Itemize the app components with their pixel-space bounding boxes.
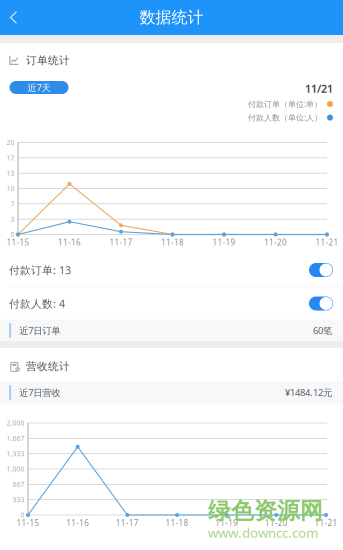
staticText: 13 xyxy=(6,169,14,178)
staticText: 3 xyxy=(10,215,14,224)
staticText: 11-15 xyxy=(6,237,29,248)
button[interactable]: Back xyxy=(2,0,32,35)
staticText: 11-21 xyxy=(314,518,337,528)
staticText: 1,667 xyxy=(6,434,24,443)
staticText: 订单统计 xyxy=(26,54,70,67)
staticText: 绿色资源网 xyxy=(208,497,323,525)
staticText: 11-19 xyxy=(212,237,235,248)
staticText: ¥1484.12元 xyxy=(285,386,332,399)
staticText: 付款订单: 13 xyxy=(9,263,71,277)
button[interactable]: 付款人数: 4 xyxy=(0,290,343,316)
staticText: 近7日营收 xyxy=(19,386,60,399)
staticText: 333 xyxy=(12,495,24,504)
staticText: 2,000 xyxy=(6,419,24,427)
staticText: 11-16 xyxy=(66,518,89,528)
staticText: 11-15 xyxy=(16,518,39,528)
staticText: 60笔 xyxy=(313,324,332,337)
staticText: 数据统计 xyxy=(139,8,203,27)
staticText: 付款人数: 4 xyxy=(9,296,65,311)
staticText: 7 xyxy=(10,199,14,208)
staticText: 17 xyxy=(6,153,14,162)
staticText: 11-17 xyxy=(116,518,139,528)
staticText: 近7日订单 xyxy=(19,324,60,337)
staticText: 20 xyxy=(6,138,14,147)
staticText: 11-16 xyxy=(58,237,81,248)
staticText: 营收统计 xyxy=(26,360,70,373)
staticText: 11-20 xyxy=(265,518,288,528)
staticText: 0 xyxy=(20,511,24,519)
staticText: 付款订单（单位:单） xyxy=(248,99,322,109)
button[interactable]: 付款订单: 13 xyxy=(0,257,343,283)
button[interactable]: 近7天 xyxy=(9,81,68,94)
staticText: 1,000 xyxy=(6,465,24,473)
staticText: 11-17 xyxy=(109,237,132,248)
staticText: 11-18 xyxy=(165,518,188,528)
staticText: 10 xyxy=(6,184,14,193)
staticText: 11-21 xyxy=(315,237,338,248)
staticText: 0 xyxy=(10,230,14,239)
staticText: 667 xyxy=(12,480,24,489)
staticText: 1,333 xyxy=(6,449,24,458)
staticText: 近7天 xyxy=(27,81,50,94)
staticText: 11/21 xyxy=(305,81,333,96)
staticText: 11-19 xyxy=(215,518,238,528)
staticText: www.downcc.com xyxy=(208,524,318,541)
staticText: 付款人数（单位:人） xyxy=(248,112,322,123)
staticText: 11-18 xyxy=(161,237,184,248)
staticText: 11-20 xyxy=(264,237,287,248)
